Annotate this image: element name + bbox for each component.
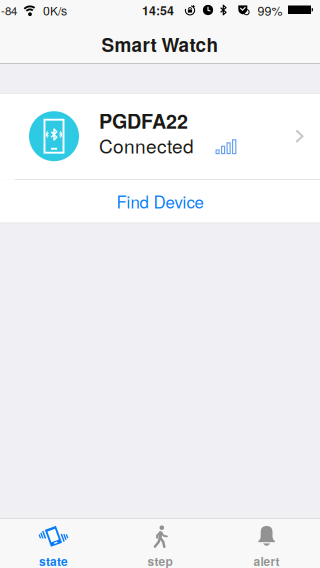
staticText: Find Device: [116, 189, 203, 213]
button[interactable]: state: [0, 519, 107, 568]
button[interactable]: alert: [213, 519, 320, 568]
staticText: PGDFA22: [99, 107, 188, 135]
staticText: Connected: [99, 131, 194, 159]
staticText: -84: [1, 2, 17, 18]
button[interactable]: Find Device: [0, 180, 320, 223]
staticText: Smart Watch: [101, 31, 218, 58]
button[interactable]: step: [107, 519, 213, 568]
staticText: 99%: [257, 1, 282, 19]
staticText: step: [147, 552, 172, 568]
staticText: state: [39, 552, 68, 568]
button[interactable]: PGDFA22: [0, 94, 320, 179]
staticText: alert: [254, 552, 280, 568]
staticText: 14:54: [142, 1, 174, 19]
staticText: 0K/s: [43, 1, 67, 19]
